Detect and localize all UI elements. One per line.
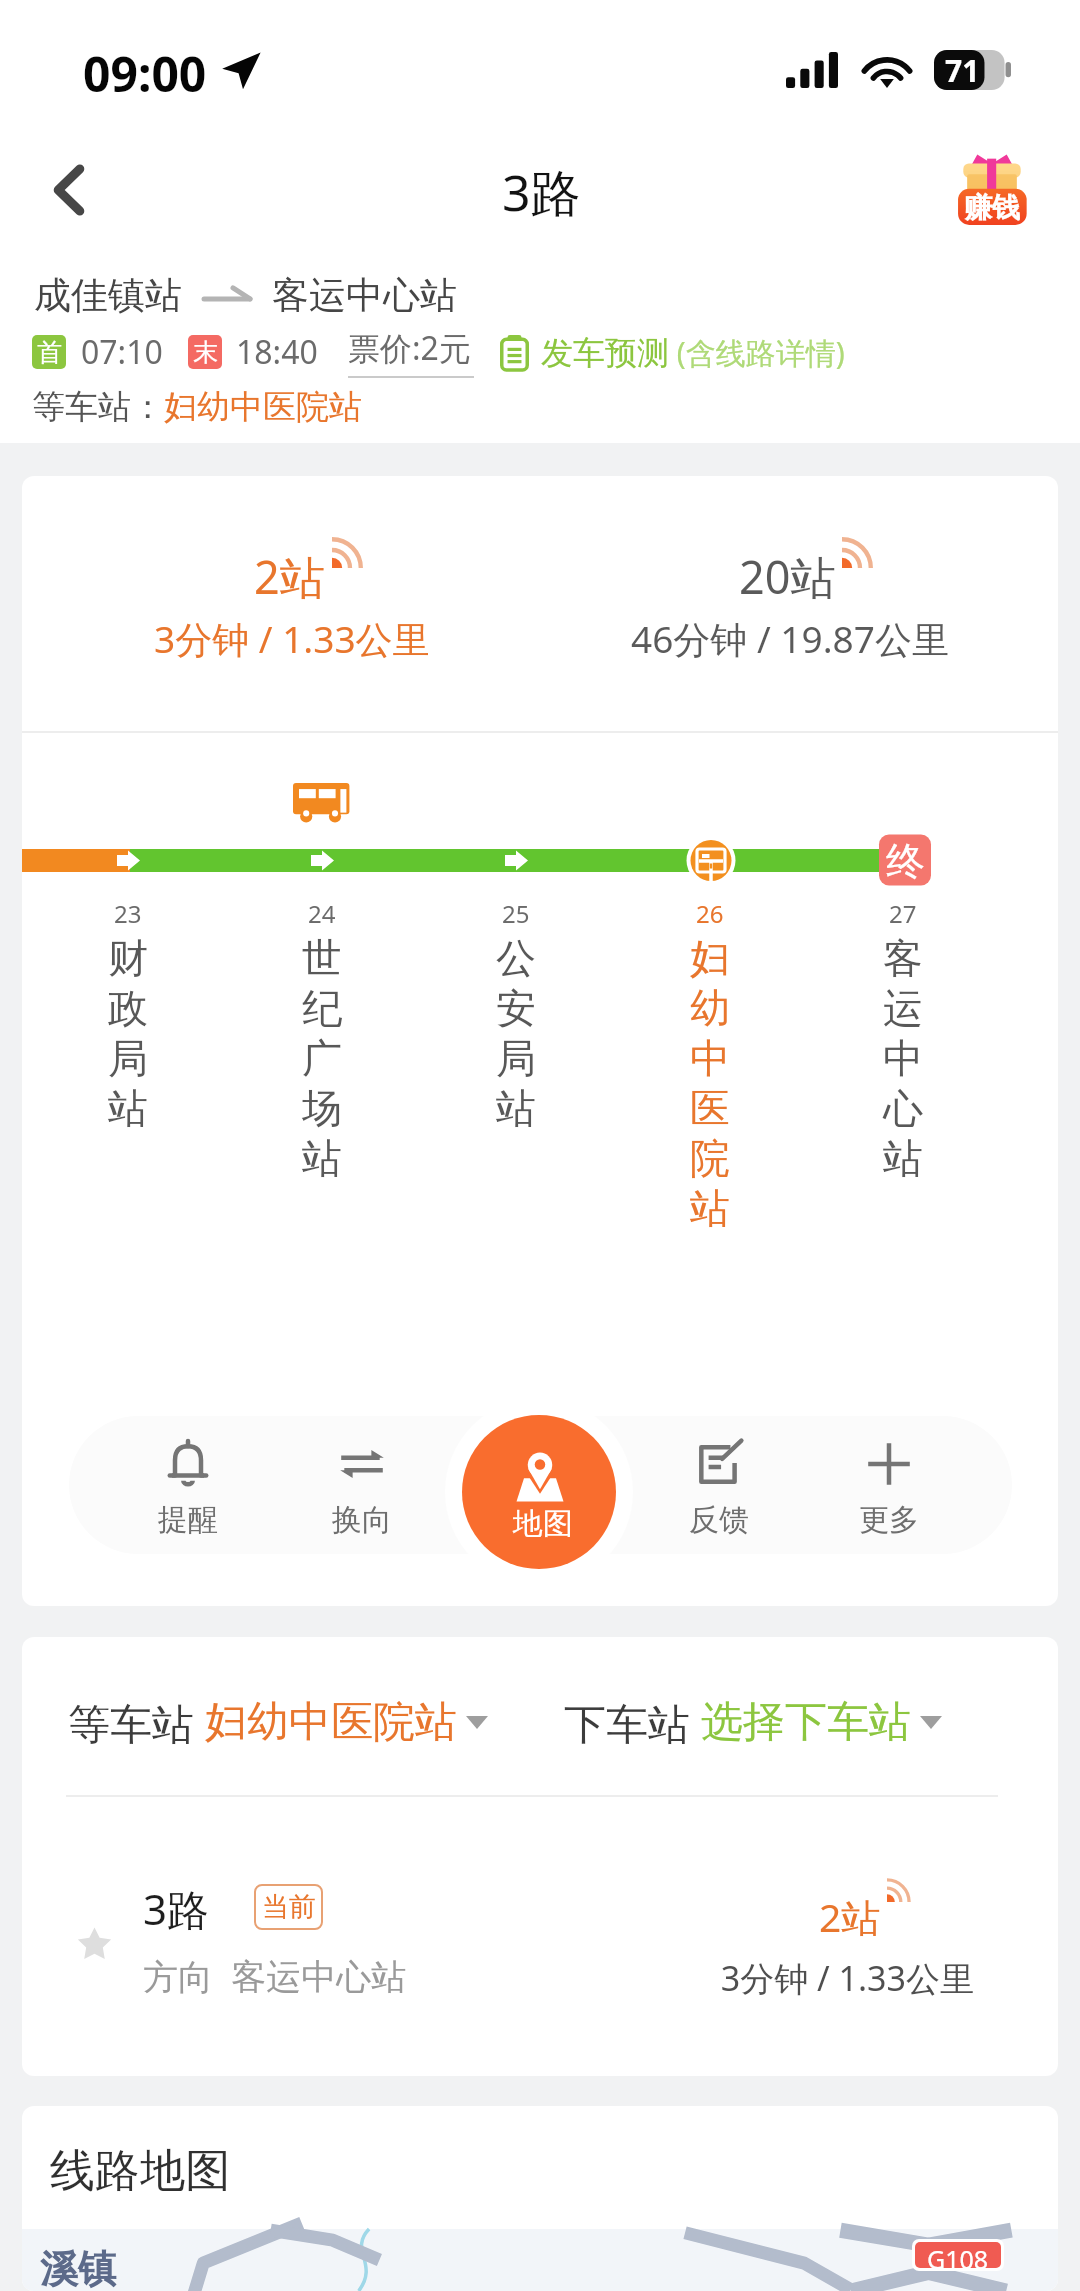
staticText: 18:40 — [236, 330, 318, 374]
staticText: 地图 — [513, 1505, 573, 1543]
staticText: 广 — [302, 1033, 342, 1083]
staticText: 安 — [496, 983, 536, 1033]
button[interactable]: 地图 — [462, 1415, 616, 1569]
staticText: 07:10 — [81, 330, 163, 374]
staticText: 中 — [690, 1033, 730, 1083]
staticText: 等车站： — [32, 386, 164, 428]
staticText: 站 — [690, 1183, 730, 1233]
button[interactable]: 换向 — [292, 1438, 432, 1554]
staticText: 末 — [193, 337, 218, 368]
staticText: 方向 客运中心站 — [143, 1952, 407, 2000]
button[interactable] — [22, 1817, 1058, 1997]
staticText: 提醒 — [158, 1501, 218, 1539]
staticText: 客 — [883, 933, 923, 983]
staticText: 首 — [37, 337, 62, 368]
staticText: 20站 — [739, 546, 836, 607]
button[interactable]: 等车站 — [68, 1694, 488, 1751]
staticText: 局 — [108, 1033, 148, 1083]
staticText: 场 — [302, 1083, 342, 1133]
staticText: 世 — [302, 933, 342, 983]
staticText: 25 — [502, 897, 530, 930]
staticText: 反馈 — [689, 1501, 749, 1539]
staticText: 当前 — [262, 1890, 316, 1924]
button[interactable]: 下车站 — [564, 1694, 942, 1751]
staticText: 3路 — [143, 1880, 210, 1937]
staticText: 09:00 — [83, 41, 207, 106]
staticText: 票价:2元 — [348, 326, 471, 370]
staticText: 心 — [883, 1083, 923, 1133]
staticText: 27 — [889, 897, 917, 930]
staticText: 3路 — [502, 158, 581, 226]
button[interactable]: 票价:2元 — [348, 326, 474, 378]
staticText: 换向 — [332, 1501, 392, 1539]
staticText: 站 — [302, 1133, 342, 1183]
staticText: 2站 — [819, 1890, 881, 1943]
button[interactable]: 返回 — [29, 150, 109, 230]
staticText: 3分钟 / 1.33公里 — [622, 1955, 974, 2001]
staticText: 46分钟 / 19.87公里 — [631, 613, 949, 664]
button[interactable]: 20站 — [590, 476, 990, 731]
staticText: G108 — [927, 2242, 989, 2268]
staticText: 24 — [308, 897, 336, 930]
staticText: 站 — [883, 1133, 923, 1183]
staticText: 妇幼中医院站 — [164, 386, 362, 428]
staticText: 溪镇 — [40, 2245, 116, 2291]
staticText: 71 — [945, 50, 980, 90]
staticText: 政 — [108, 983, 148, 1033]
staticText: 线路地图 — [50, 2143, 230, 2200]
staticText: 站 — [496, 1083, 536, 1133]
staticText: 医 — [690, 1083, 730, 1133]
staticText: (含线路详情) — [669, 332, 845, 373]
staticText: 幼 — [690, 983, 730, 1033]
staticText: 成佳镇站 — [34, 272, 182, 319]
button[interactable]: 等车站： — [32, 386, 362, 428]
button[interactable]: 提醒 — [118, 1438, 258, 1554]
staticText: 2站 — [254, 546, 325, 607]
staticText: 下车站 — [564, 1694, 701, 1751]
staticText: 妇 — [690, 933, 730, 983]
staticText: 23 — [114, 897, 142, 930]
staticText: 站 — [108, 1083, 148, 1133]
staticText: 发车预测 — [541, 333, 669, 373]
staticText: 赚钱 — [964, 190, 1020, 225]
staticText: 妇幼中医院站 — [205, 1696, 457, 1749]
staticText: 终 — [886, 837, 925, 886]
button[interactable]: 2站 — [92, 476, 492, 731]
button[interactable]: 赚钱 — [957, 152, 1027, 226]
staticText: 纪 — [302, 983, 342, 1033]
staticText: 3分钟 / 1.33公里 — [154, 613, 430, 664]
button[interactable]: 更多 — [819, 1438, 959, 1554]
staticText: 更多 — [859, 1501, 919, 1539]
staticText: 院 — [690, 1133, 730, 1183]
staticText: 26 — [696, 897, 724, 930]
staticText: 公 — [496, 933, 536, 983]
staticText: 选择下车站 — [701, 1696, 911, 1749]
staticText: 财 — [108, 933, 148, 983]
button[interactable]: 反馈 — [649, 1438, 789, 1554]
button[interactable]: 发车预测 — [500, 332, 845, 373]
staticText: 局 — [496, 1033, 536, 1083]
staticText: 客运中心站 — [272, 272, 457, 319]
staticText: 等车站 — [68, 1694, 205, 1751]
staticText: 运 — [883, 983, 923, 1033]
staticText: 中 — [883, 1033, 923, 1083]
